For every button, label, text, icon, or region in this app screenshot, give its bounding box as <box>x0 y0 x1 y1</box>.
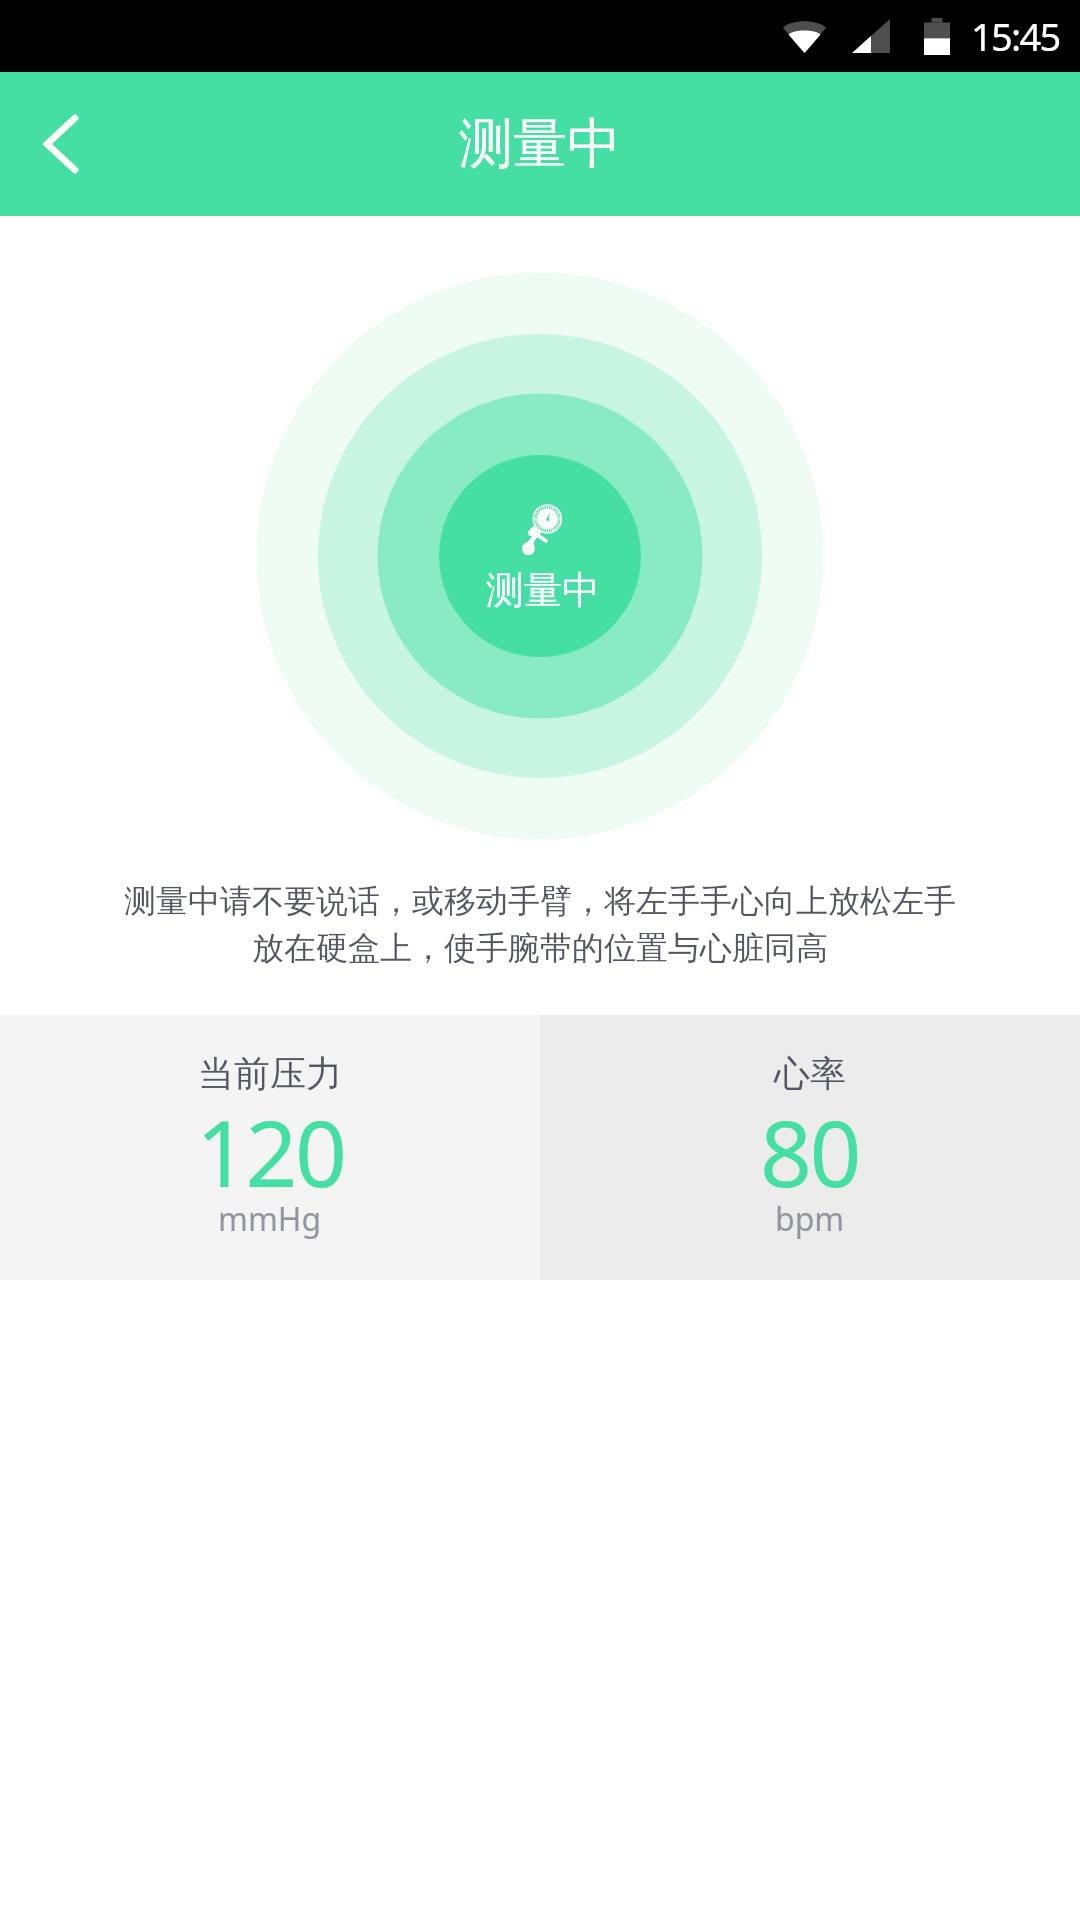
staticText: bpm <box>775 1197 845 1241</box>
staticText: 80 <box>760 1090 860 1214</box>
staticText: 测量中请不要说话，或移动手臂，将左手手心向上放松左手 放在硬盒上，使手腕带的位置… <box>0 881 1080 969</box>
staticText: 测量中 <box>486 566 600 614</box>
button[interactable]: 当前压力 <box>0 1015 540 1280</box>
button[interactable]: 心率 <box>540 1015 1080 1280</box>
staticText: 15:45 <box>971 10 1060 62</box>
staticText: mmHg <box>218 1197 322 1241</box>
staticText: 120 <box>196 1090 345 1214</box>
staticText: 当前压力 <box>198 1051 342 1096</box>
staticText: 心率 <box>774 1051 846 1096</box>
button[interactable]: Back <box>0 72 120 216</box>
staticText: 测量中 <box>459 110 621 178</box>
